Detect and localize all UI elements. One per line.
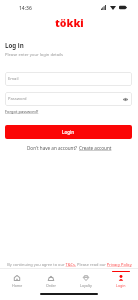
staticText: 14:36 [19, 5, 32, 12]
button[interactable]: Login [103, 269, 138, 289]
staticText: Forgot password? [5, 109, 39, 114]
button[interactable]: Login [5, 125, 132, 139]
button[interactable]: Forgot password? [5, 109, 39, 114]
staticText: Don't have an account? [27, 145, 79, 151]
button[interactable]: Show password [122, 96, 129, 103]
staticText: Email [8, 76, 19, 82]
button[interactable]: Email [5, 72, 132, 86]
staticText: Log in [5, 41, 24, 49]
staticText: Order [46, 283, 56, 288]
button[interactable]: Create account [79, 145, 112, 151]
staticText: Please enter your login details [5, 52, 64, 58]
button[interactable]: Home [0, 269, 34, 289]
staticText: Login [62, 129, 75, 135]
button[interactable]: Order [34, 269, 68, 289]
staticText: Login [116, 283, 126, 288]
button[interactable]: Loyalty [68, 269, 103, 289]
staticText: Loyalty [80, 283, 92, 288]
button[interactable]: Password [5, 92, 132, 106]
staticText: Password [8, 96, 27, 102]
staticText: Home [12, 283, 23, 288]
staticText: tökki [55, 16, 84, 30]
staticText: By continuing you agree to our T&Cs. Ple… [7, 262, 132, 267]
